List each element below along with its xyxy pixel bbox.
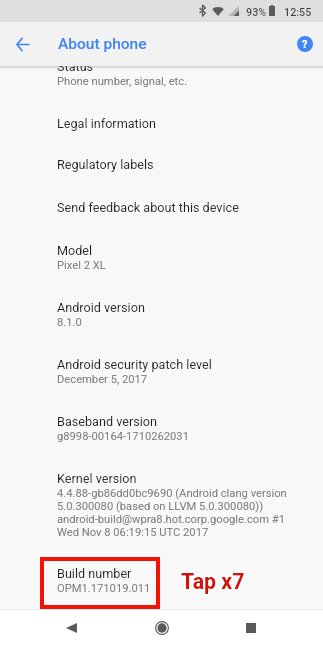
button[interactable]: Recent apps (233, 610, 269, 646)
staticText: Tap x7 (181, 569, 245, 594)
button[interactable]: Kernel version (0, 471, 323, 539)
button[interactable]: Status (0, 59, 323, 88)
button[interactable]: Send feedback about this device (0, 200, 323, 215)
button[interactable]: Back (53, 610, 89, 646)
button[interactable]: Build number (40, 557, 160, 609)
staticText: Kernel version (57, 471, 137, 486)
button[interactable]: Legal information (0, 116, 323, 131)
staticText: OPM1.171019.011 (57, 582, 151, 595)
staticText: Legal information (57, 116, 156, 131)
staticText: 8.1.0 (57, 316, 82, 329)
staticText: December 5, 2017 (57, 373, 148, 386)
staticText: 93% (246, 6, 267, 19)
staticText: Model (57, 243, 93, 258)
button[interactable]: Home (144, 610, 180, 646)
staticText: About phone (58, 35, 147, 53)
staticText: Tap x7 (181, 569, 245, 594)
staticText: Send feedback about this device (57, 200, 239, 215)
staticText: Phone number, signal, etc. (57, 75, 188, 88)
button[interactable]: Android version (0, 300, 323, 329)
staticText: Regulatory labels (57, 157, 154, 172)
staticText: Android version (57, 300, 145, 315)
button[interactable]: Android security patch level (0, 357, 323, 386)
staticText: Android security patch level (57, 357, 212, 372)
staticText: Baseband version (57, 414, 158, 429)
staticText: Status (57, 59, 94, 74)
staticText: g8998-00164-1710262031 (57, 430, 189, 443)
staticText: Pixel 2 XL (57, 259, 106, 272)
button[interactable]: Model (0, 243, 323, 272)
button[interactable]: Regulatory labels (0, 157, 323, 172)
staticText: ? (302, 38, 308, 51)
staticText: 12:55 (284, 6, 312, 19)
button[interactable]: Navigate up (8, 30, 36, 58)
button[interactable]: Help (292, 31, 318, 57)
staticText: Build number (57, 566, 132, 581)
staticText: 4.4.88-gb86dd0bc9690 (Android clang vers… (57, 487, 287, 539)
button[interactable]: Baseband version (0, 414, 323, 443)
